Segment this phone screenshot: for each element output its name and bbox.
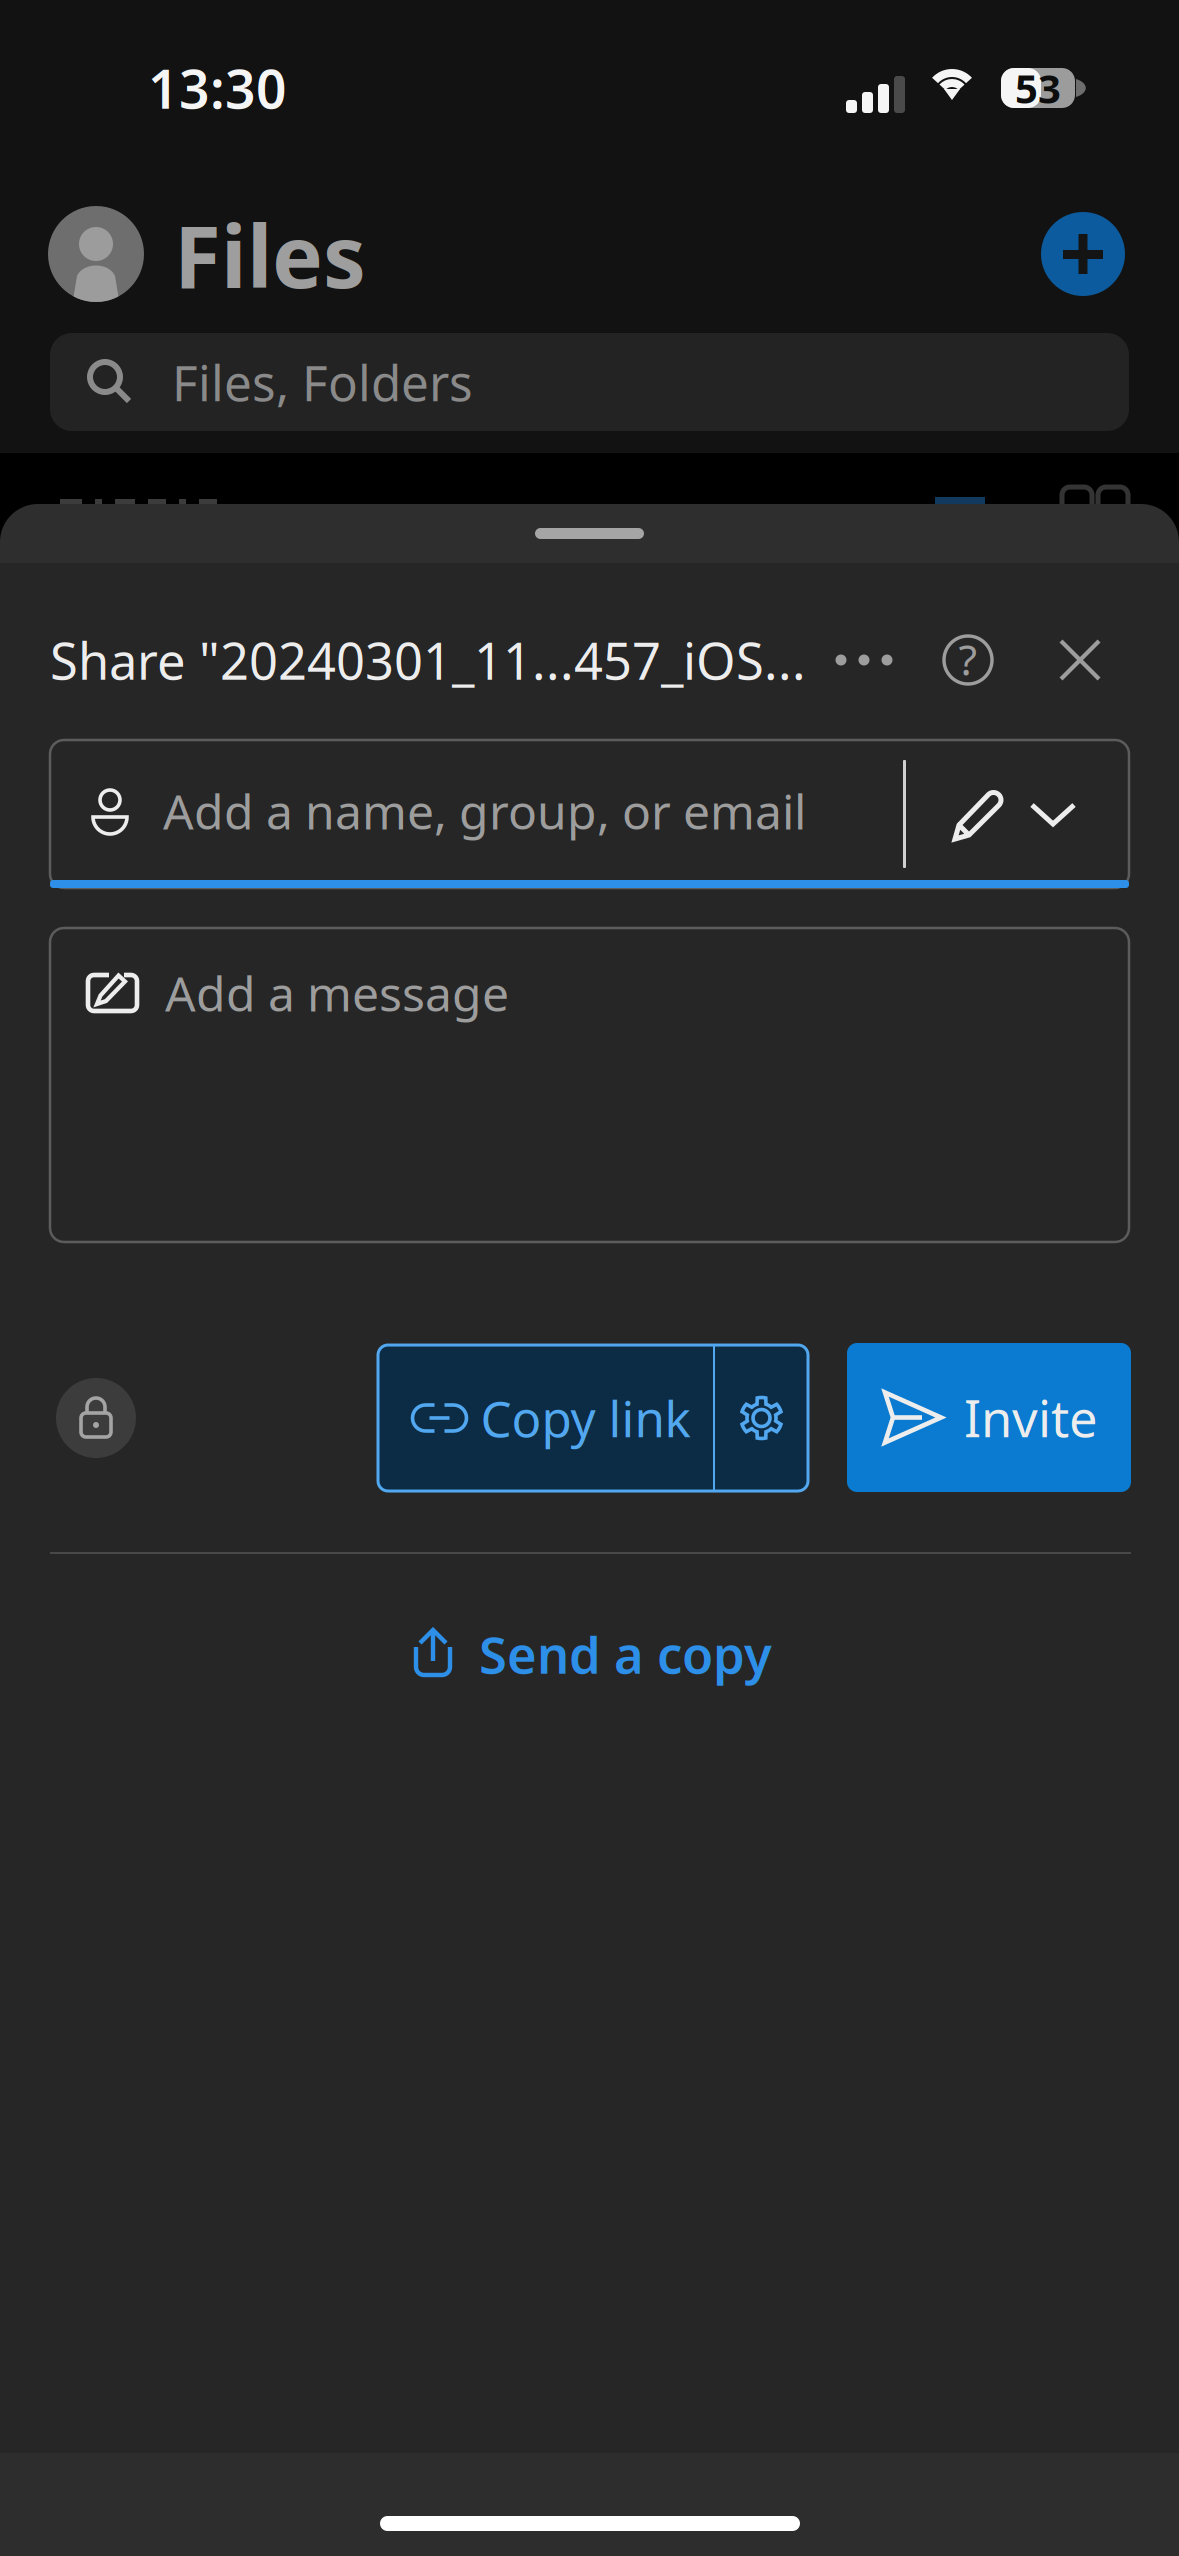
staticText: 13:30 <box>148 53 287 123</box>
button[interactable]: Copy link <box>388 1345 713 1491</box>
button[interactable]: Close <box>1057 637 1103 683</box>
button[interactable]: Send a copy <box>407 1610 772 1698</box>
staticText: Files, Folders <box>172 349 473 415</box>
button[interactable]: More options <box>832 632 896 688</box>
button[interactable]: Expand options <box>1028 798 1078 828</box>
staticText: Invite <box>964 1384 1098 1451</box>
staticText: Add a message <box>165 961 509 1025</box>
button[interactable]: Edit permissions <box>950 784 1008 844</box>
staticText: ? <box>958 631 977 687</box>
button[interactable]: Add <box>1041 212 1125 296</box>
staticText: Files <box>174 198 366 312</box>
button[interactable]: Link settings <box>715 1345 808 1491</box>
staticText: Copy link <box>480 1385 690 1451</box>
staticText: Share "20240301_11...457_iOS... <box>50 626 806 694</box>
staticText: Add a name, group, or email <box>163 779 806 843</box>
staticText: 53 <box>1015 61 1061 114</box>
button[interactable]: Invite <box>847 1343 1131 1492</box>
staticText: Send a copy <box>479 1620 772 1688</box>
button[interactable]: Help <box>942 634 994 686</box>
